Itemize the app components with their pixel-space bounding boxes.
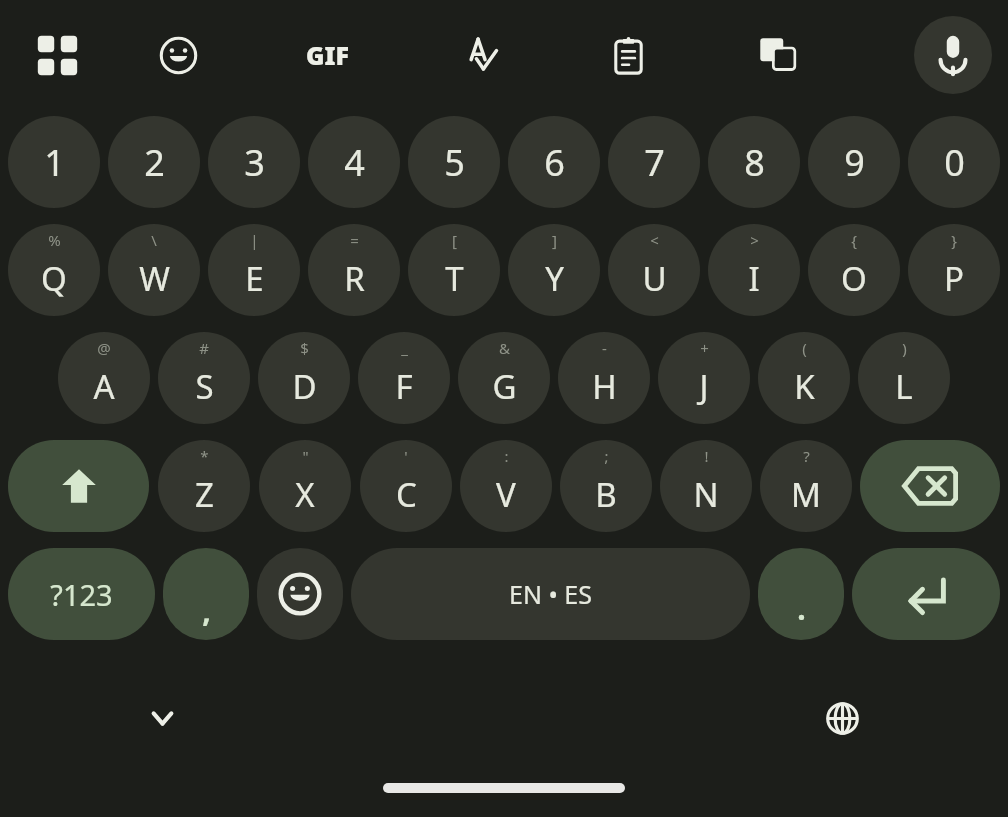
button[interactable]: , [163, 548, 249, 640]
staticText: _ [401, 338, 408, 358]
button[interactable]: > [708, 224, 800, 316]
button[interactable]: & [458, 332, 550, 424]
staticText: Q [41, 256, 67, 301]
button[interactable]: + [658, 332, 750, 424]
button[interactable]: Backspace [860, 440, 1000, 532]
staticText: M [791, 472, 821, 517]
staticText: . [797, 588, 806, 629]
button[interactable]: ( [758, 332, 850, 424]
button[interactable]: * [158, 440, 250, 532]
button[interactable]: Change language [812, 688, 872, 748]
button[interactable]: ) [858, 332, 950, 424]
button[interactable]: ; [560, 440, 652, 532]
button[interactable]: ! [660, 440, 752, 532]
staticText: 3 [244, 138, 265, 187]
staticText: : [504, 446, 509, 466]
staticText: 9 [844, 138, 865, 187]
staticText: ! [704, 446, 709, 466]
staticText: [ [452, 230, 457, 250]
staticText: # [199, 338, 209, 358]
button[interactable]: Hide keyboard [132, 688, 192, 748]
button[interactable]: GIF [292, 22, 362, 88]
staticText: + [700, 338, 709, 358]
staticText: F [395, 364, 413, 409]
button[interactable]: [ [408, 224, 500, 316]
staticText: G [492, 364, 517, 409]
button[interactable]: Emoji [145, 22, 211, 88]
button[interactable]: Clipboard [595, 22, 661, 88]
button[interactable]: } [908, 224, 1000, 316]
staticText: * [200, 446, 209, 466]
button[interactable]: ' [360, 440, 452, 532]
staticText: E [245, 256, 264, 301]
button[interactable]: Shift [8, 440, 149, 532]
button[interactable]: Voice input [914, 16, 992, 94]
staticText: 2 [144, 138, 165, 187]
staticText: V [496, 472, 516, 517]
button[interactable]: 2 [108, 116, 200, 208]
staticText: W [139, 256, 170, 301]
staticText: N [693, 472, 719, 517]
staticText: Z [195, 472, 214, 517]
staticText: B [595, 472, 617, 517]
button[interactable]: 0 [908, 116, 1000, 208]
staticText: C [396, 472, 417, 517]
button[interactable]: _ [358, 332, 450, 424]
button[interactable]: 3 [208, 116, 300, 208]
button[interactable]: 9 [808, 116, 900, 208]
button[interactable]: 8 [708, 116, 800, 208]
button[interactable]: # [158, 332, 250, 424]
staticText: ' [404, 446, 408, 466]
button[interactable]: 7 [608, 116, 700, 208]
button[interactable]: = [308, 224, 400, 316]
button[interactable]: Enter [852, 548, 1000, 640]
button[interactable]: 6 [508, 116, 600, 208]
button[interactable]: . [758, 548, 844, 640]
staticText: 1 [44, 138, 65, 187]
button[interactable]: : [460, 440, 552, 532]
button[interactable]: " [259, 440, 351, 532]
staticText: S [195, 364, 214, 409]
staticText: 7 [644, 138, 665, 187]
staticText: ( [802, 338, 807, 358]
button[interactable]: { [808, 224, 900, 316]
button[interactable]: ?123 [8, 548, 155, 640]
staticText: ] [552, 230, 557, 250]
staticText: = [350, 230, 359, 250]
button[interactable]: ? [760, 440, 852, 532]
button[interactable]: Keyboard modes [24, 22, 90, 88]
staticText: I [748, 256, 760, 301]
staticText: R [344, 256, 365, 301]
staticText: ?123 [50, 575, 113, 614]
button[interactable]: Translate [744, 22, 810, 88]
button[interactable]: < [608, 224, 700, 316]
staticText: L [895, 364, 913, 409]
staticText: J [699, 364, 709, 409]
button[interactable]: - [558, 332, 650, 424]
staticText: ; [604, 446, 609, 466]
button[interactable]: $ [258, 332, 350, 424]
button[interactable]: % [8, 224, 100, 316]
button[interactable]: \ [108, 224, 200, 316]
staticText: $ [300, 338, 309, 358]
button[interactable]: Emoji [257, 548, 343, 640]
staticText: 6 [544, 138, 565, 187]
staticText: \ [151, 230, 157, 250]
button[interactable]: 1 [8, 116, 100, 208]
staticText: U [642, 256, 667, 301]
button[interactable]: @ [58, 332, 150, 424]
button[interactable]: 5 [408, 116, 500, 208]
staticText: | [250, 230, 259, 250]
staticText: A [93, 364, 115, 409]
staticText: O [841, 256, 867, 301]
staticText: ) [902, 338, 907, 358]
button[interactable]: | [208, 224, 300, 316]
staticText: " [302, 446, 309, 466]
staticText: 4 [344, 138, 365, 187]
button[interactable]: 4 [308, 116, 400, 208]
button[interactable]: ] [508, 224, 600, 316]
staticText: EN • ES [509, 577, 592, 611]
staticText: GIF [306, 38, 349, 72]
button[interactable]: EN • ES [351, 548, 750, 640]
button[interactable]: Spell check [445, 22, 511, 88]
